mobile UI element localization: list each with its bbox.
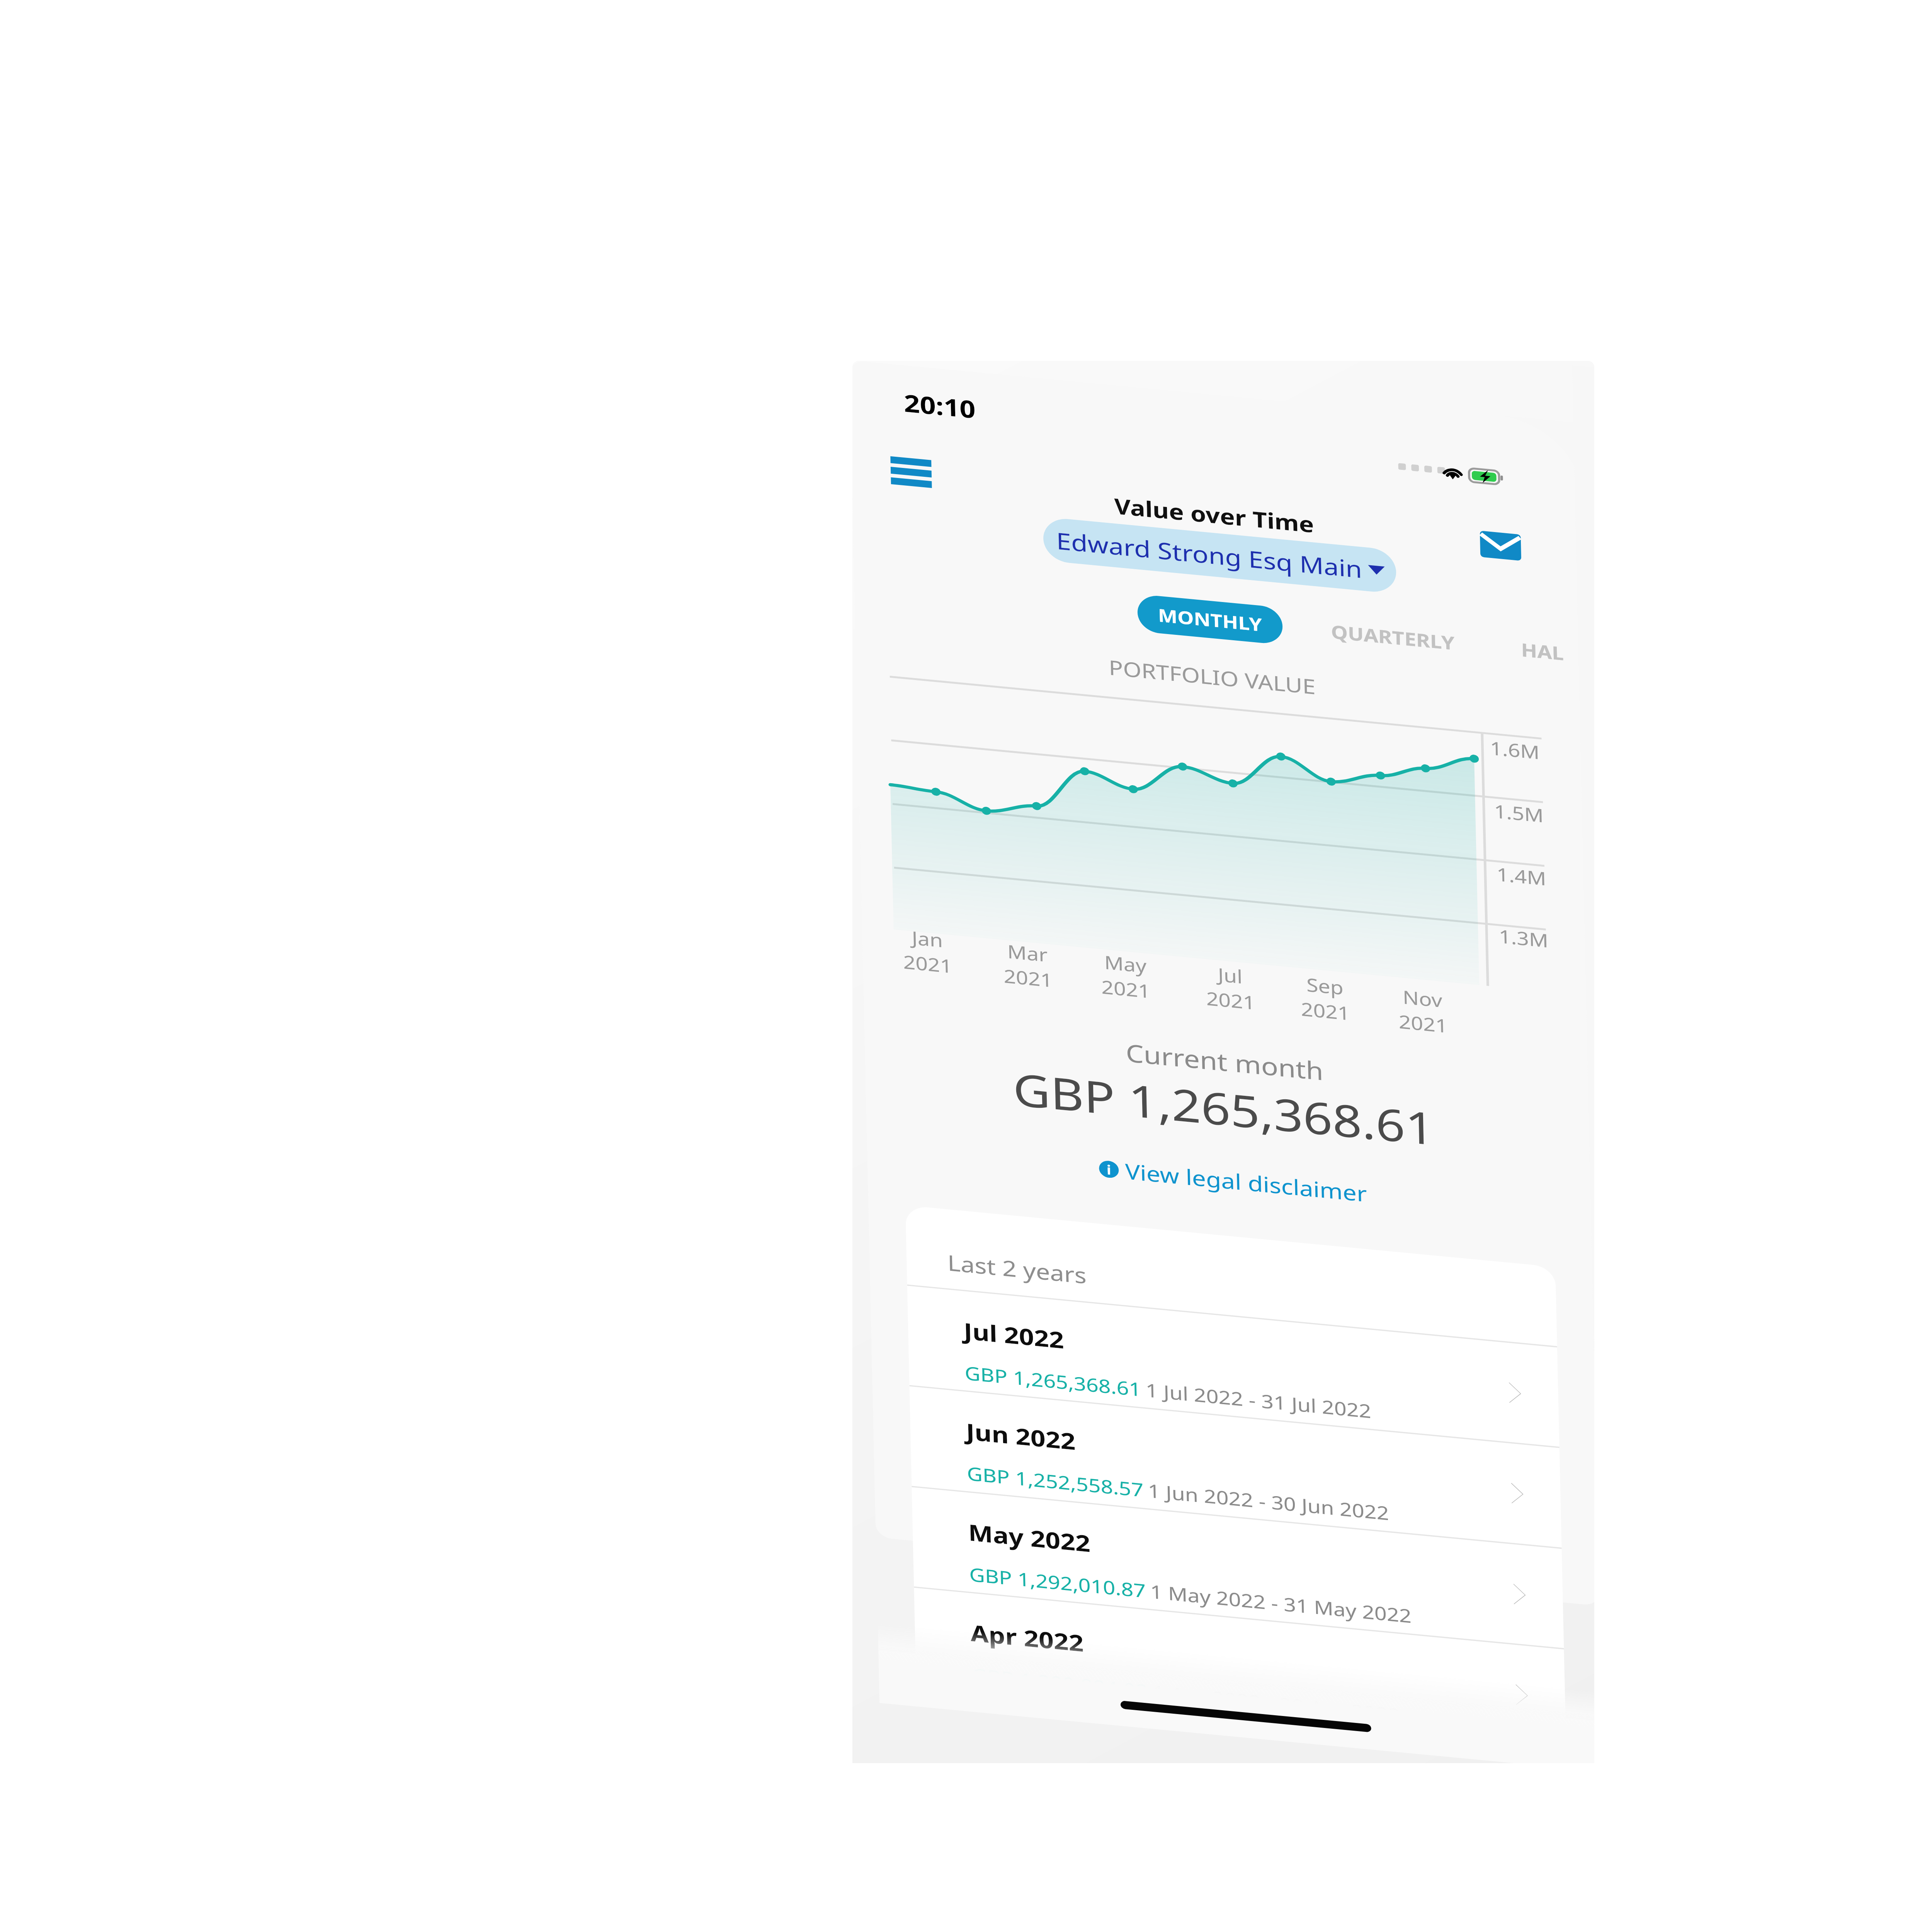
staticText: GBP 1,280,884.03 bbox=[963, 1619, 1157, 1747]
button[interactable]: Half yearly bbox=[1508, 616, 1591, 687]
staticText: 1 May 2022 - 31 May 2022 bbox=[1142, 1515, 1420, 1692]
staticText: View legal disclaimer bbox=[1115, 1097, 1377, 1267]
staticText: MONTHLY bbox=[1150, 577, 1270, 662]
staticText: HAL bbox=[1513, 626, 1572, 676]
staticText: 2021 bbox=[995, 951, 1061, 1005]
staticText: i bbox=[1101, 1160, 1117, 1179]
staticText: Jun 2022 bbox=[956, 1389, 1086, 1483]
staticText: GBP 1,265,368.61 bbox=[956, 1317, 1150, 1445]
staticText: 2021 bbox=[1093, 962, 1159, 1016]
staticText: Apr 2022 bbox=[960, 1589, 1094, 1686]
button[interactable]: Menu bbox=[856, 421, 967, 523]
staticText: May bbox=[1096, 939, 1155, 989]
staticText: May 2022 bbox=[958, 1487, 1101, 1588]
button[interactable]: QUARTERLY bbox=[1312, 578, 1474, 696]
staticText: 2021 bbox=[1293, 984, 1359, 1038]
staticText: 1.3M bbox=[1490, 911, 1557, 965]
button[interactable]: Mail bbox=[1451, 500, 1550, 591]
button[interactable]: Jul 2022 bbox=[874, 1126, 1592, 1606]
staticText: 20:10 bbox=[893, 368, 987, 443]
button[interactable]: Jun 2022 bbox=[877, 1226, 1594, 1706]
staticText: PORTFOLIO VALUE bbox=[852, 452, 1583, 902]
staticText: 1.6M bbox=[1482, 723, 1548, 777]
staticText: 2021 bbox=[1390, 997, 1456, 1050]
staticText: GBP 1,252,558.57 bbox=[958, 1417, 1152, 1546]
staticText: Mar bbox=[999, 929, 1056, 977]
staticText: 1 Jul 2022 - 31 Jul 2022 bbox=[1137, 1322, 1380, 1479]
staticText: Sep bbox=[1298, 963, 1352, 1009]
staticText: Value over Time bbox=[852, 361, 1586, 741]
staticText: Jan bbox=[903, 917, 951, 960]
staticText: 2021 bbox=[1198, 974, 1264, 1027]
staticText: 2021 bbox=[895, 937, 961, 991]
button[interactable]: May 2022 bbox=[879, 1327, 1594, 1763]
staticText: 1 Jun 2022 - 30 Jun 2022 bbox=[1139, 1419, 1397, 1585]
staticText: Edward Strong Esq Main bbox=[1046, 450, 1373, 659]
button[interactable]: Apr 2022 bbox=[881, 1428, 1594, 1763]
staticText: Jul bbox=[1209, 956, 1251, 995]
staticText: Nov bbox=[1394, 974, 1451, 1023]
button[interactable]: Edward Strong Esq Main bbox=[1029, 431, 1411, 680]
staticText: QUARTERLY bbox=[1323, 589, 1463, 685]
staticText: Last 2 years bbox=[938, 1213, 1097, 1324]
button[interactable]: MONTHLY bbox=[1125, 559, 1295, 680]
staticText: 1.4M bbox=[1488, 849, 1555, 903]
staticText: GBP 1,292,010.87 bbox=[961, 1518, 1154, 1646]
staticText: Current month bbox=[852, 834, 1594, 1289]
button[interactable]: i bbox=[1089, 1088, 1377, 1273]
staticText: 1.5M bbox=[1486, 786, 1552, 840]
staticText: GBP 1,265,368.61 bbox=[852, 867, 1594, 1349]
staticText: Jul 2022 bbox=[953, 1291, 1074, 1380]
staticText: 1 Apr 2022 - 30 Apr 2022 bbox=[1144, 1618, 1409, 1763]
